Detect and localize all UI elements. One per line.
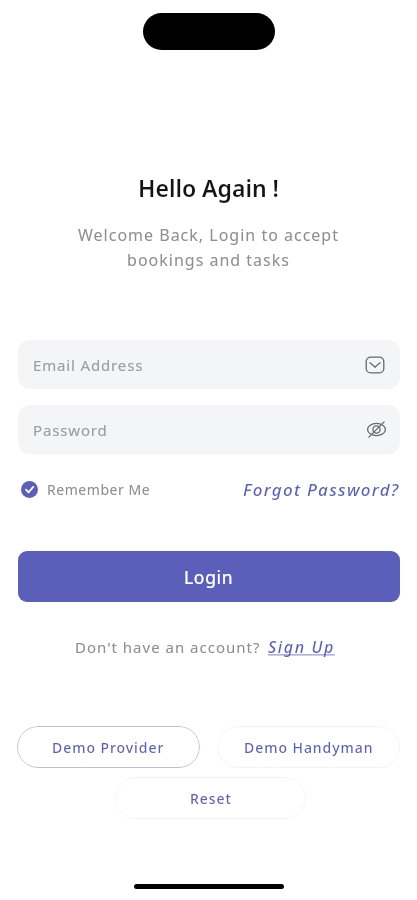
button[interactable]: Forgot Password?	[243, 478, 400, 501]
button[interactable]: Demo Handyman	[217, 726, 400, 768]
other: Show password	[367, 420, 386, 439]
staticText: Don't have an account?	[75, 637, 261, 657]
staticText: Email Address	[33, 355, 144, 375]
staticText: Login	[184, 565, 234, 589]
staticText: Demo Handyman	[244, 738, 374, 757]
staticText: Password	[33, 420, 108, 440]
button[interactable]: Demo Provider	[17, 726, 200, 768]
button[interactable]: Email Address	[18, 340, 400, 389]
staticText: Reset	[190, 789, 232, 808]
staticText: Hello Again !	[0, 172, 417, 203]
button[interactable]: Remember Me	[18, 480, 151, 499]
button[interactable]: Reset	[115, 777, 306, 819]
other: Email	[364, 354, 386, 376]
staticText: Welcome Back, Login to accept bookings a…	[0, 224, 417, 270]
button[interactable]: Sign Up	[268, 636, 335, 658]
staticText: Demo Provider	[52, 738, 165, 757]
button[interactable]: Login	[18, 551, 400, 602]
staticText: Remember Me	[47, 480, 151, 499]
button[interactable]: Password	[18, 405, 400, 454]
